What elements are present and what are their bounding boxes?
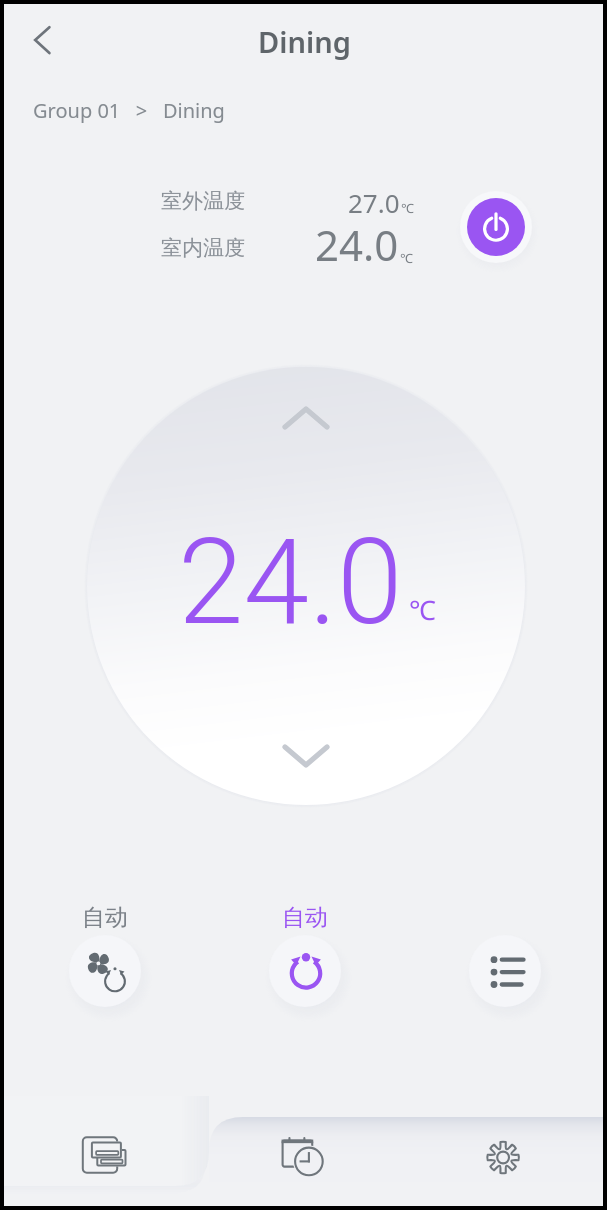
staticText: 室内温度 [161,235,245,261]
staticText: 24.0 [315,216,399,273]
staticText: Group 01 > Dining [33,97,225,124]
button[interactable]: Decrease temperature [285,747,327,765]
button[interactable]: Settings [403,1116,603,1206]
staticText: 室外温度 [161,188,245,214]
staticText: 24.0 [178,514,403,652]
button[interactable]: Schedule [203,1116,403,1206]
staticText: ℃ [409,591,436,628]
button[interactable]: Temperature dial [87,367,525,805]
staticText: 自动 [282,903,328,932]
button[interactable]: Devices [4,1116,203,1206]
button[interactable]: Back [18,20,66,68]
staticText: 自动 [82,903,128,932]
button[interactable]: Fan speed [69,935,141,1007]
button[interactable]: Increase temperature [285,409,327,427]
staticText: ℃ [400,249,413,267]
button[interactable]: Power [467,198,525,256]
button[interactable]: Mode [269,935,341,1007]
staticText: ℃ [401,199,414,217]
button[interactable]: More options [469,935,541,1007]
staticText: Dining [258,22,351,61]
staticText: 27.0 [348,185,400,220]
